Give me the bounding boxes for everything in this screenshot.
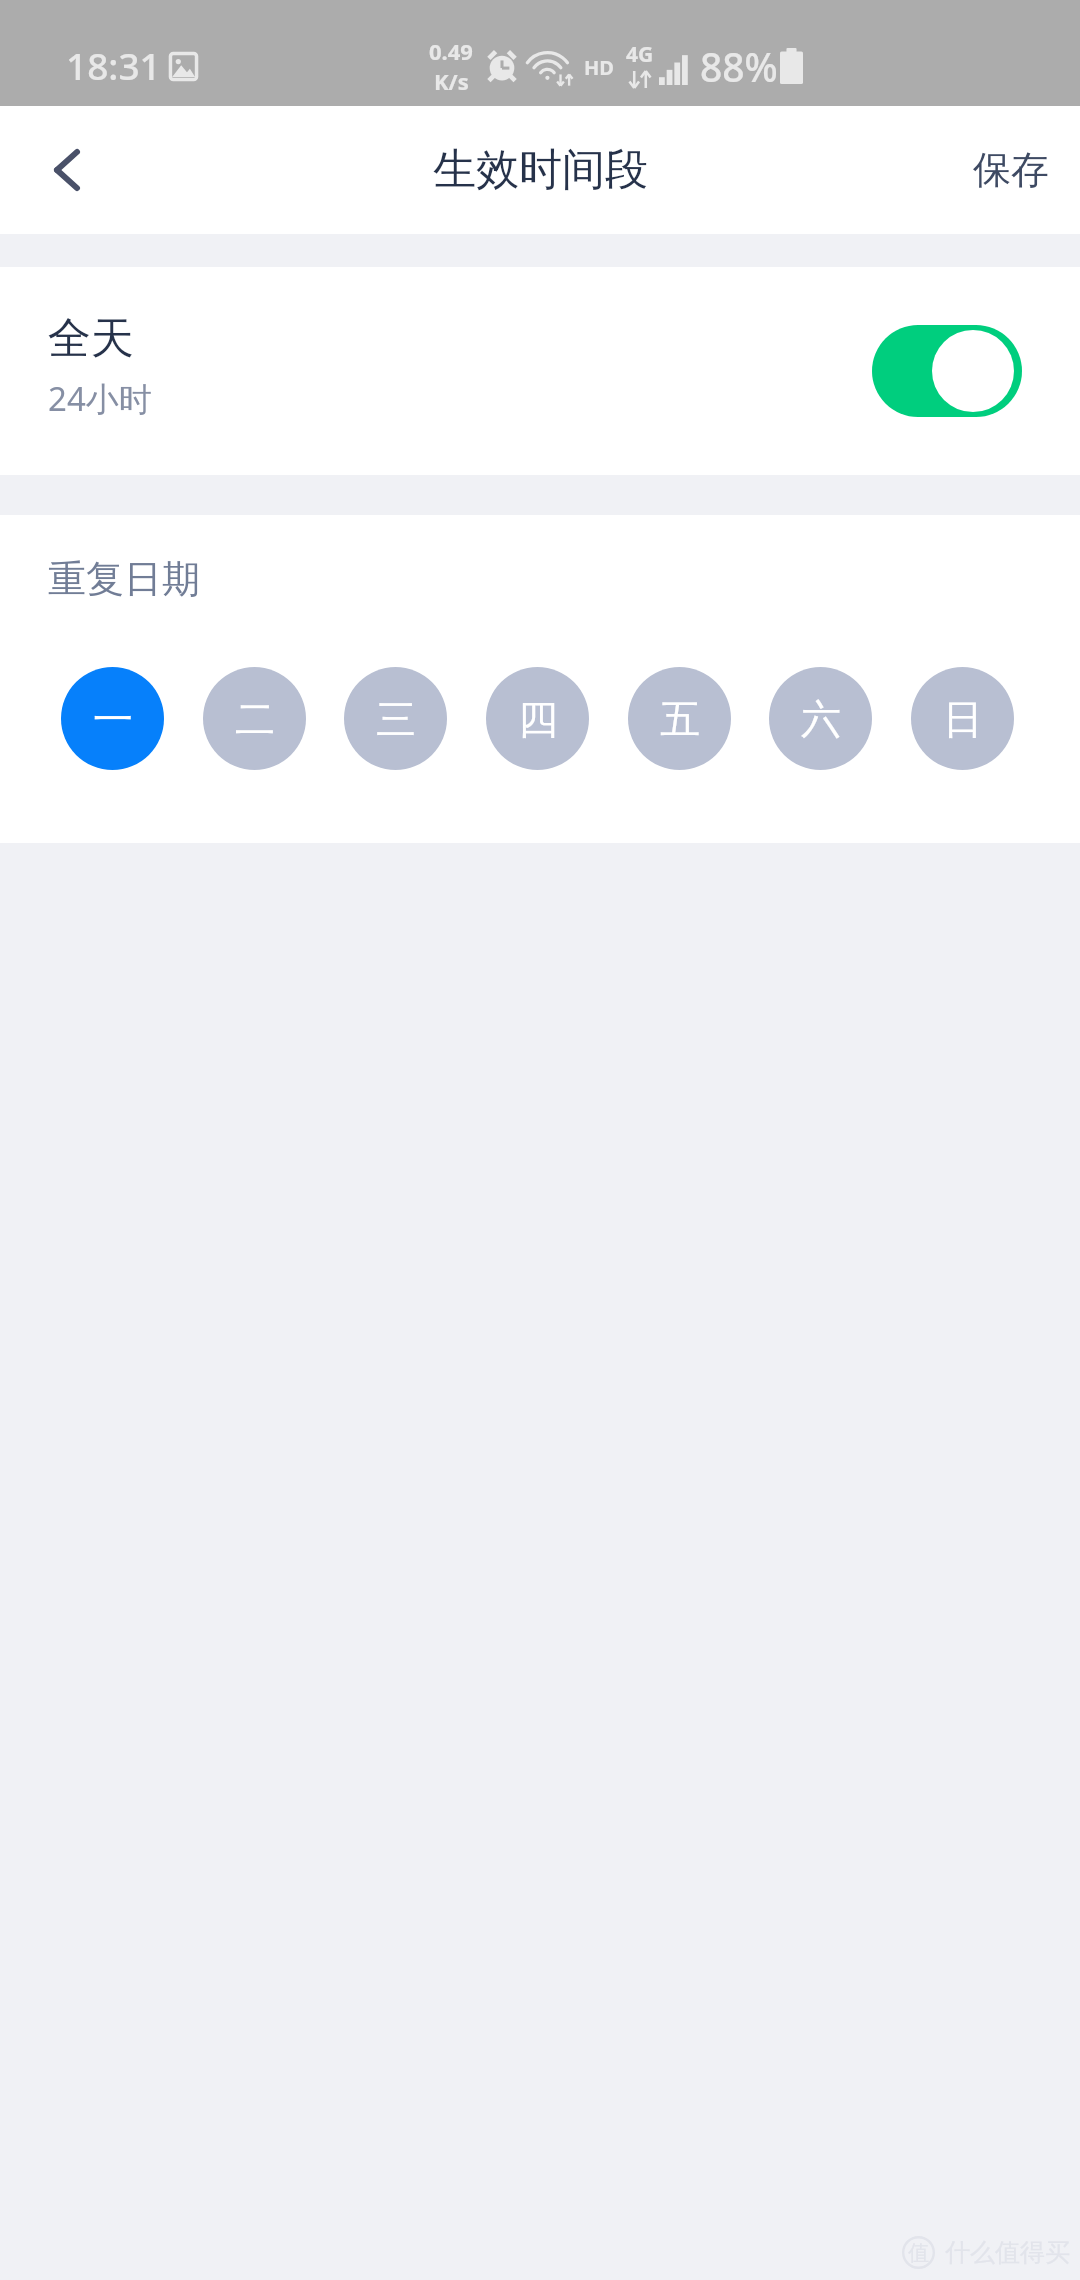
staticText: 日	[943, 694, 983, 744]
staticText: 0.49	[429, 36, 473, 66]
staticText: 18:31	[66, 40, 161, 90]
button[interactable]: 二	[203, 667, 306, 770]
staticText: 三	[376, 694, 416, 744]
staticText: 生效时间段	[433, 143, 648, 197]
staticText: 4G	[626, 40, 654, 69]
staticText: 重复日期	[48, 555, 200, 603]
button[interactable]: 六	[769, 667, 872, 770]
staticText: 五	[660, 694, 700, 744]
staticText: 全天	[48, 312, 134, 366]
button[interactable]: All day toggle	[872, 325, 1022, 417]
button[interactable]: 日	[911, 667, 1014, 770]
button[interactable]: 三	[344, 667, 447, 770]
staticText: 保存	[973, 146, 1049, 194]
staticText: 六	[801, 694, 841, 744]
button[interactable]: 四	[486, 667, 589, 770]
staticText: 四	[518, 694, 558, 744]
button[interactable]: 保存	[941, 122, 1080, 218]
staticText: 值	[908, 2240, 929, 2266]
staticText: 什么值得买	[945, 2237, 1070, 2268]
button[interactable]: 全天	[0, 267, 1080, 475]
staticText: K/s	[434, 66, 469, 96]
button[interactable]: 五	[628, 667, 731, 770]
button[interactable]: 一	[61, 667, 164, 770]
button[interactable]: Back	[0, 106, 128, 234]
staticText: 一	[93, 694, 133, 744]
staticText: 24小时	[48, 376, 152, 421]
staticText: 二	[235, 694, 275, 744]
staticText: HD	[584, 54, 614, 81]
staticText: 88%	[700, 40, 778, 93]
